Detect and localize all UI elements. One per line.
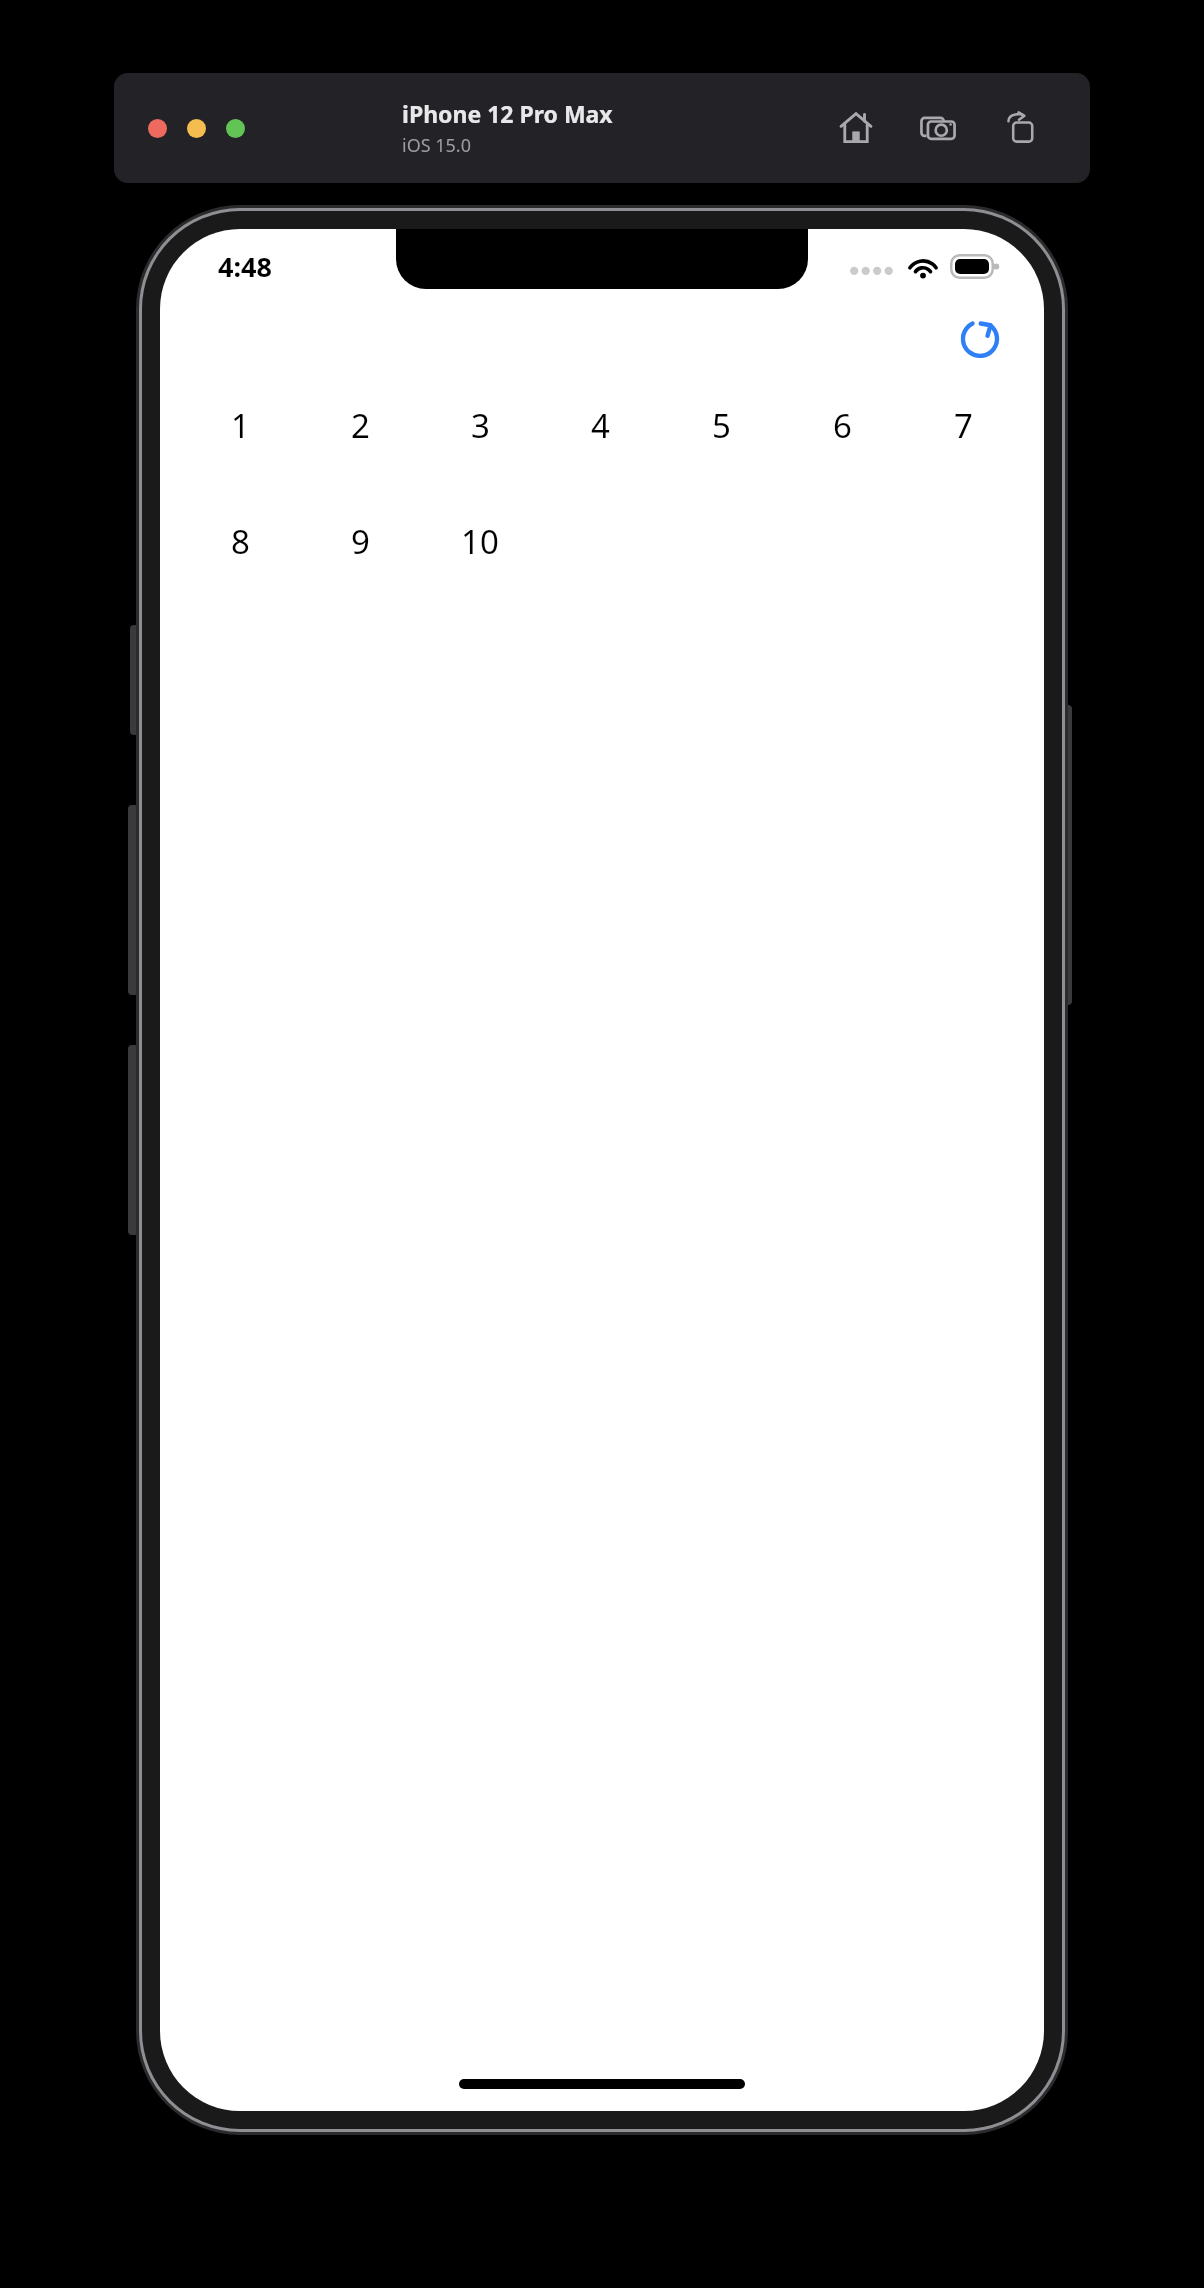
- staticText: 1: [231, 403, 250, 448]
- staticText: 6: [833, 403, 852, 448]
- button[interactable]: Rotate: [992, 100, 1048, 156]
- button[interactable]: 8: [180, 513, 300, 569]
- staticText: 5: [712, 403, 731, 448]
- staticText: 4: [591, 403, 610, 448]
- staticText: 4:48: [218, 248, 272, 285]
- button[interactable]: 2: [300, 397, 420, 453]
- button[interactable]: 7: [903, 397, 1024, 453]
- button[interactable]: 9: [300, 513, 420, 569]
- button[interactable]: Window button: [148, 119, 167, 138]
- button[interactable]: Refresh: [948, 305, 1012, 369]
- staticText: 8: [231, 519, 250, 564]
- button[interactable]: 4: [540, 397, 661, 453]
- staticText: 7: [954, 403, 973, 448]
- button[interactable]: Window button: [226, 119, 245, 138]
- button[interactable]: 10: [420, 513, 540, 569]
- staticText: iOS 15.0: [402, 133, 471, 158]
- button[interactable]: 3: [420, 397, 540, 453]
- button[interactable]: 6: [782, 397, 903, 453]
- button[interactable]: 5: [661, 397, 782, 453]
- staticText: 10: [461, 519, 499, 564]
- button[interactable]: Window button: [187, 119, 206, 138]
- button[interactable]: 1: [180, 397, 300, 453]
- staticText: 2: [351, 403, 370, 448]
- button[interactable]: Screenshot: [910, 100, 966, 156]
- staticText: 3: [471, 403, 490, 448]
- button[interactable]: Home: [828, 100, 884, 156]
- staticText: 9: [351, 519, 370, 564]
- staticText: iPhone 12 Pro Max: [402, 98, 613, 129]
